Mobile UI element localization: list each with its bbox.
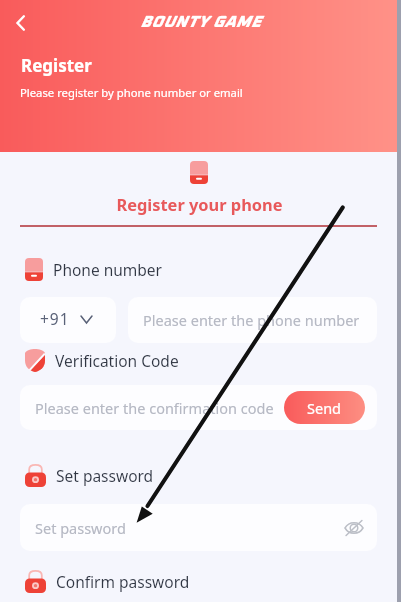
button[interactable]: Please enter the phone number xyxy=(128,297,377,343)
staticText: Set password xyxy=(56,465,154,486)
staticText: Set password xyxy=(35,518,126,538)
staticText: Register xyxy=(21,54,92,77)
staticText: Verification Code xyxy=(55,350,179,371)
button[interactable]: Set password xyxy=(20,504,377,551)
button[interactable]: Back xyxy=(6,8,36,38)
staticText: Please register by phone number or email xyxy=(20,85,243,100)
staticText: Please enter the phone number xyxy=(143,310,360,330)
button[interactable]: Show password xyxy=(341,515,367,541)
button[interactable]: Send xyxy=(284,391,365,424)
staticText: Phone number xyxy=(53,259,163,280)
staticText: Please enter the confirmation code xyxy=(35,398,274,418)
button[interactable]: Please enter the confirmation code xyxy=(20,385,377,430)
staticText: Register your phone xyxy=(0,193,400,215)
staticText: +91 xyxy=(40,308,70,329)
staticText: Send xyxy=(307,398,342,418)
staticText: Confirm password xyxy=(56,571,190,592)
staticText: BOUNTY GAME xyxy=(140,14,261,30)
button[interactable]: +91 xyxy=(20,297,116,343)
